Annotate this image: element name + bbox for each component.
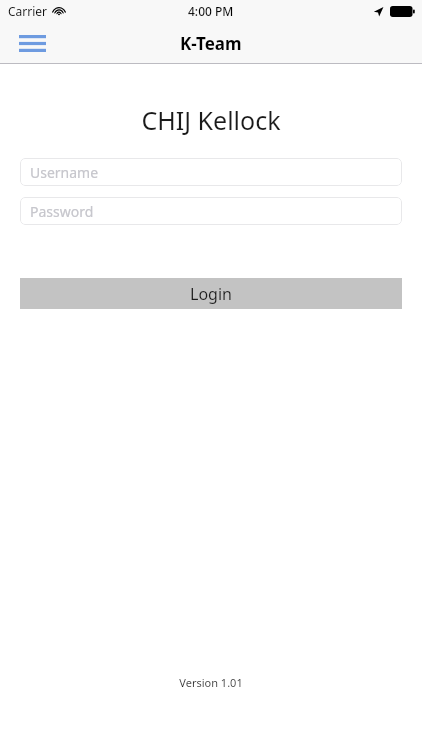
staticText: Password [30, 202, 94, 221]
button[interactable]: Password [20, 197, 402, 225]
staticText: K-Team [180, 32, 242, 55]
staticText: Login [190, 283, 232, 305]
staticText: 4:00 PM [188, 3, 234, 19]
button[interactable]: Menu [10, 24, 54, 62]
staticText: Carrier [8, 3, 48, 19]
staticText: CHIJ Kellock [0, 103, 422, 137]
button[interactable]: Login [20, 278, 402, 309]
staticText: Version 1.01 [0, 675, 422, 690]
button[interactable]: Username [20, 158, 402, 186]
staticText: Username [30, 163, 99, 182]
